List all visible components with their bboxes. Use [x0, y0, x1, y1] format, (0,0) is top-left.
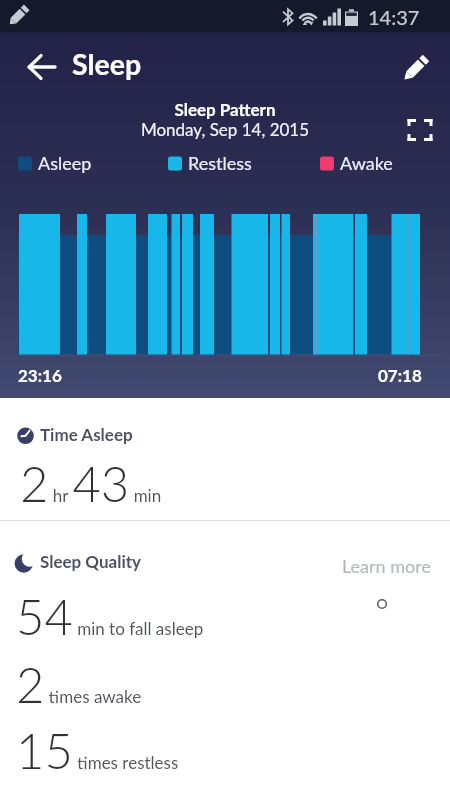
staticText: Awake [340, 152, 393, 174]
staticText: Monday, Sep 14, 2015 [0, 119, 450, 139]
staticText: Sleep Quality [40, 551, 142, 571]
staticText: 15 times restless [16, 721, 179, 780]
button[interactable] [18, 45, 62, 89]
button[interactable] [398, 43, 442, 87]
staticText: 14:37 [368, 5, 420, 29]
staticText: Restless [188, 152, 252, 174]
staticText: Sleep Pattern [0, 99, 450, 119]
button[interactable] [402, 112, 438, 148]
staticText: 2 hr 43 min [20, 454, 162, 513]
staticText: Asleep [38, 152, 92, 174]
staticText: 54 min to fall asleep [16, 587, 204, 646]
staticText: 07:18 [378, 365, 422, 385]
staticText: 2 times awake [16, 655, 142, 714]
button[interactable]: Learn more [342, 555, 431, 577]
staticText: Sleep [72, 47, 142, 81]
staticText: Learn more [342, 555, 431, 577]
staticText: 23:16 [18, 365, 62, 385]
staticText: Time Asleep [40, 424, 133, 444]
